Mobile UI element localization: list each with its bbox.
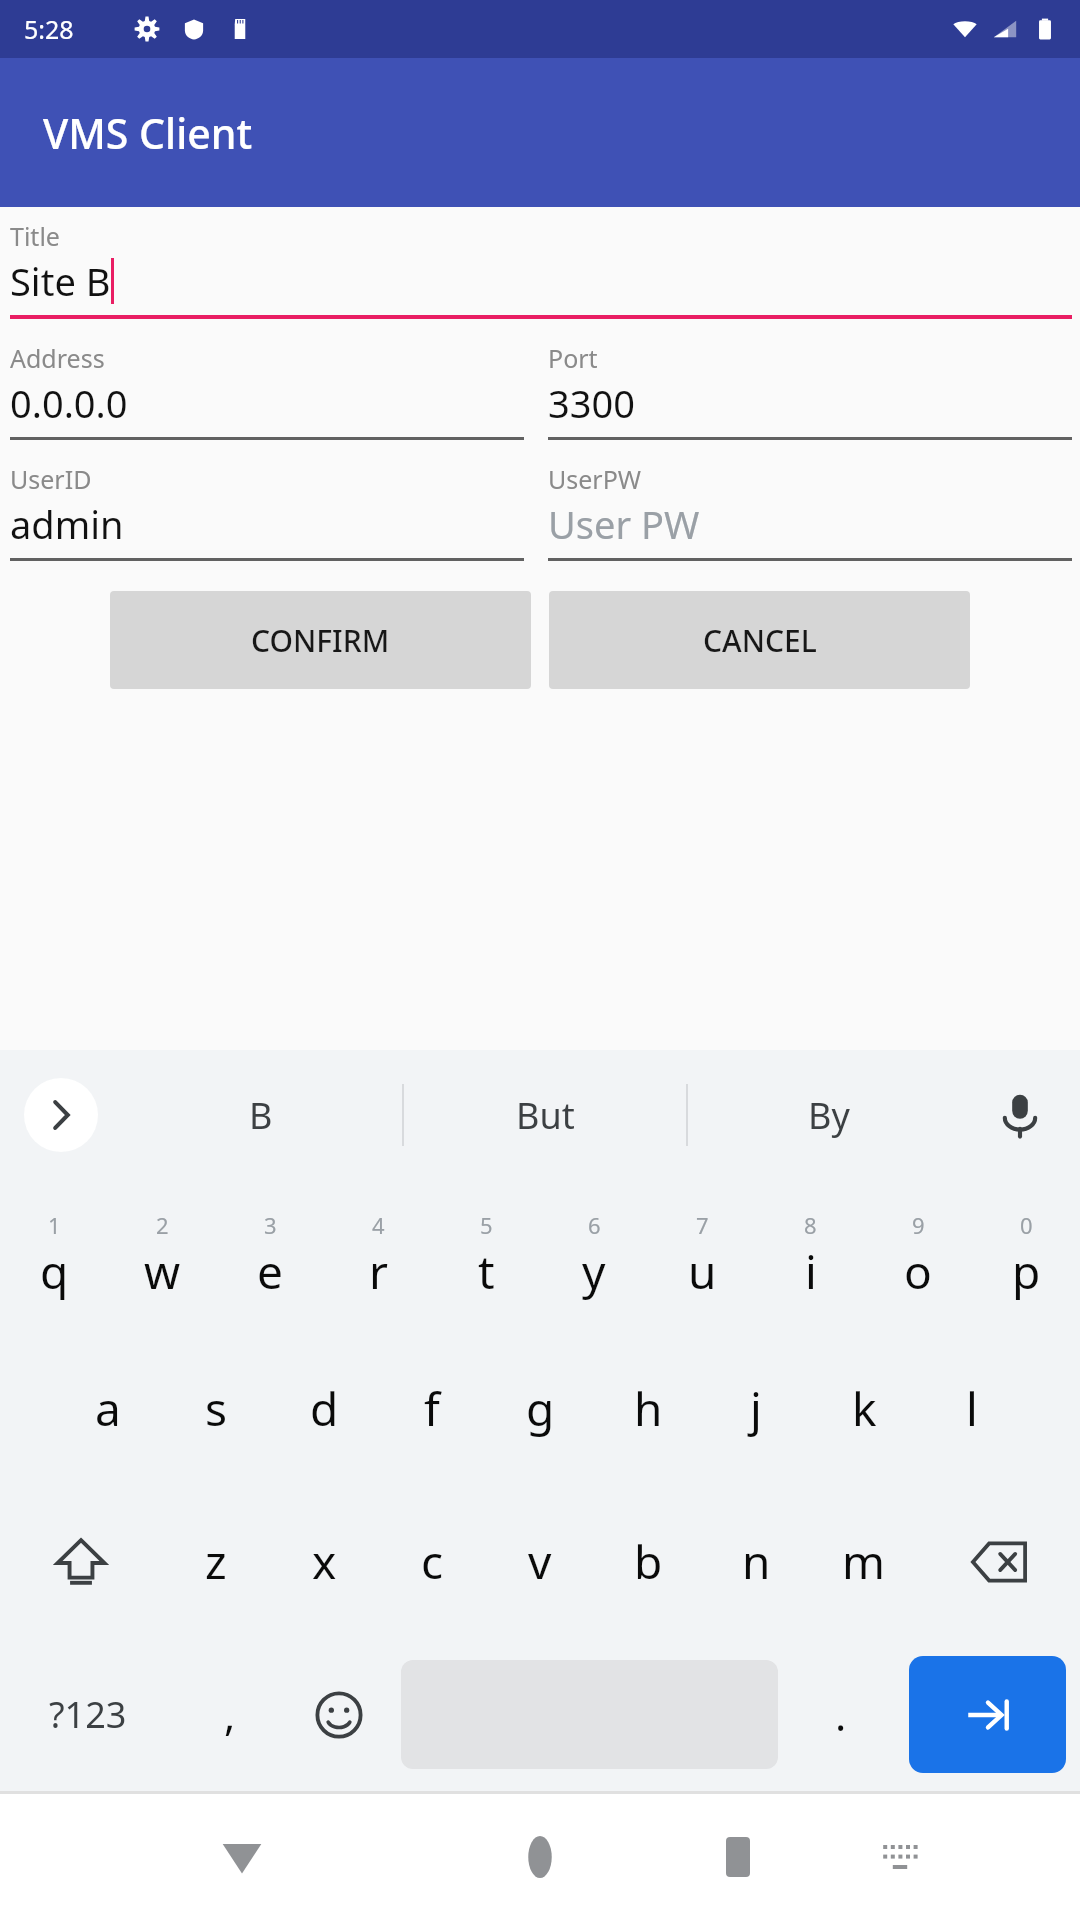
button[interactable]: Back bbox=[200, 1815, 284, 1899]
staticText: , bbox=[224, 1686, 236, 1743]
staticText: 9 bbox=[912, 1210, 925, 1240]
staticText: k bbox=[852, 1377, 877, 1440]
staticText: z bbox=[205, 1530, 227, 1593]
button[interactable]: n bbox=[702, 1485, 810, 1638]
staticText: d bbox=[310, 1377, 339, 1440]
staticText: 3 bbox=[264, 1210, 277, 1240]
button[interactable]: 7 bbox=[648, 1180, 756, 1332]
staticText: 6 bbox=[588, 1210, 601, 1240]
staticText: 0.0.0.0 bbox=[10, 377, 128, 429]
staticText: f bbox=[424, 1377, 440, 1440]
button[interactable]: Next bbox=[909, 1656, 1066, 1773]
button[interactable]: Emoji bbox=[284, 1638, 393, 1791]
staticText: w bbox=[144, 1240, 181, 1303]
staticText: n bbox=[742, 1530, 771, 1593]
button[interactable]: B bbox=[120, 1050, 402, 1180]
button[interactable]: Recent apps bbox=[696, 1815, 780, 1899]
button[interactable]: CONFIRM bbox=[110, 591, 531, 689]
button[interactable]: 1 bbox=[0, 1180, 108, 1332]
button[interactable]: Shift bbox=[0, 1485, 162, 1638]
staticText: CANCEL bbox=[703, 620, 817, 661]
staticText: CONFIRM bbox=[251, 620, 390, 661]
staticText: v bbox=[528, 1530, 552, 1593]
staticText: 3300 bbox=[548, 377, 635, 429]
staticText: i bbox=[805, 1240, 817, 1303]
button[interactable]: a bbox=[54, 1332, 162, 1485]
button[interactable]: f bbox=[378, 1332, 486, 1485]
button[interactable]: v bbox=[486, 1485, 594, 1638]
button[interactable]: 0 bbox=[972, 1180, 1080, 1332]
staticText: 0 bbox=[1020, 1210, 1033, 1240]
staticText: m bbox=[842, 1530, 886, 1593]
button[interactable]: 8 bbox=[756, 1180, 864, 1332]
button[interactable]: m bbox=[810, 1485, 918, 1638]
staticText: UserID bbox=[10, 462, 92, 496]
button[interactable]: 9 bbox=[864, 1180, 972, 1332]
staticText: 8 bbox=[804, 1210, 817, 1240]
button[interactable]: b bbox=[594, 1485, 702, 1638]
staticText: . bbox=[835, 1686, 847, 1743]
button[interactable]: Switch keyboard bbox=[860, 1817, 940, 1897]
staticText: t bbox=[478, 1240, 495, 1303]
button[interactable]: More suggestions bbox=[24, 1078, 98, 1152]
staticText: Title bbox=[10, 219, 60, 253]
staticText: 2 bbox=[156, 1210, 169, 1240]
staticText: j bbox=[750, 1377, 762, 1440]
button[interactable]: 2 bbox=[108, 1180, 216, 1332]
staticText: b bbox=[634, 1530, 663, 1593]
staticText: r bbox=[369, 1240, 388, 1303]
button[interactable]: j bbox=[702, 1332, 810, 1485]
staticText: o bbox=[904, 1240, 932, 1303]
staticText: Port bbox=[548, 341, 598, 375]
button[interactable]: h bbox=[594, 1332, 702, 1485]
staticText: e bbox=[257, 1240, 283, 1303]
staticText: q bbox=[40, 1240, 69, 1303]
staticText: admin bbox=[10, 498, 124, 550]
button[interactable]: 3 bbox=[216, 1180, 324, 1332]
button[interactable]: k bbox=[810, 1332, 918, 1485]
staticText: a bbox=[95, 1377, 121, 1440]
staticText: By bbox=[808, 1091, 850, 1140]
button[interactable]: c bbox=[378, 1485, 486, 1638]
button[interactable]: Port bbox=[548, 341, 1072, 440]
staticText: ?123 bbox=[49, 1690, 127, 1739]
staticText: y bbox=[582, 1240, 606, 1303]
button[interactable]: Address bbox=[10, 341, 524, 440]
button[interactable]: Voice input bbox=[988, 1083, 1052, 1147]
staticText: c bbox=[421, 1530, 444, 1593]
staticText: Site B bbox=[10, 255, 111, 307]
button[interactable]: ?123 bbox=[0, 1638, 175, 1791]
button[interactable]: Backspace bbox=[918, 1485, 1080, 1638]
staticText: u bbox=[688, 1240, 717, 1303]
staticText: Address bbox=[10, 341, 105, 375]
button[interactable]: UserID bbox=[10, 462, 524, 561]
button[interactable]: Home bbox=[498, 1815, 582, 1899]
button[interactable]: UserPW bbox=[548, 462, 1072, 561]
button[interactable]: But bbox=[404, 1050, 686, 1180]
button[interactable]: s bbox=[162, 1332, 270, 1485]
staticText: 4 bbox=[372, 1210, 385, 1240]
staticText: UserPW bbox=[548, 462, 642, 496]
staticText: l bbox=[966, 1377, 978, 1440]
button[interactable]: 6 bbox=[540, 1180, 648, 1332]
button[interactable]: d bbox=[270, 1332, 378, 1485]
button[interactable]: CANCEL bbox=[549, 591, 970, 689]
button[interactable]: z bbox=[162, 1485, 270, 1638]
staticText: h bbox=[634, 1377, 663, 1440]
button[interactable]: l bbox=[918, 1332, 1026, 1485]
staticText: B bbox=[249, 1091, 273, 1140]
staticText: s bbox=[205, 1377, 228, 1440]
button[interactable]: By bbox=[688, 1050, 970, 1180]
button[interactable]: 5 bbox=[432, 1180, 540, 1332]
button[interactable]: x bbox=[270, 1485, 378, 1638]
button[interactable]: Title bbox=[10, 207, 1072, 319]
button[interactable]: 4 bbox=[324, 1180, 432, 1332]
button[interactable]: . bbox=[786, 1638, 895, 1791]
staticText: 5 bbox=[480, 1210, 493, 1240]
button[interactable]: , bbox=[175, 1638, 284, 1791]
staticText: p bbox=[1012, 1240, 1041, 1303]
button[interactable]: g bbox=[486, 1332, 594, 1485]
staticText: But bbox=[516, 1091, 575, 1140]
staticText: VMS Client bbox=[43, 105, 253, 161]
